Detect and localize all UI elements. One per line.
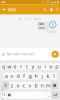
button[interactable]: ?123 [1,91,6,98]
staticText: m [45,82,50,89]
button[interactable]: r [18,63,24,70]
button[interactable]: Call [42,5,48,15]
button[interactable]: c [21,82,27,89]
staticText: u [37,63,40,70]
staticText: j [41,72,42,80]
button[interactable]: Shift [2,82,9,89]
button[interactable]: l [51,72,57,79]
staticText: 10:24 [47,30,56,34]
button[interactable]: p [54,63,59,70]
staticText: x [17,82,20,89]
staticText: a [5,72,8,80]
button[interactable]: m [45,82,51,89]
staticText: z [11,82,14,89]
button[interactable]: t [24,63,30,70]
button[interactable]: Emoji [7,91,11,98]
button[interactable]: w [6,63,12,70]
staticText: g [28,72,31,80]
staticText: 8002 [8,7,16,12]
staticText: sa., 11.01.2020 [18,17,41,20]
button[interactable]: z [9,82,15,89]
staticText: Stop [39,26,45,29]
button[interactable]: Back [1,5,8,15]
staticText: s [11,72,14,80]
button[interactable]: j [39,72,45,79]
staticText: h [34,72,37,80]
button[interactable]: More options [55,5,59,15]
button[interactable]: g [27,72,33,79]
button[interactable]: k [45,72,51,79]
staticText: y [31,63,34,70]
staticText: o [49,63,52,70]
button[interactable]: Enter [51,91,59,98]
staticText: . [48,91,49,99]
staticText: k [46,72,49,80]
staticText: d [17,72,20,80]
staticText: r [20,63,22,70]
staticText: n [40,82,43,89]
staticText: b [34,82,37,89]
staticText: f [23,72,25,80]
button[interactable]: . [46,91,51,98]
button[interactable]: i [42,63,48,70]
button[interactable]: a [3,72,9,79]
button[interactable]: q [0,63,6,70]
button[interactable]: Attach file [0,49,7,59]
staticText: w [7,63,11,70]
button[interactable]: d [15,72,21,79]
staticText: t [26,63,28,70]
staticText: q [2,63,5,70]
button[interactable]: h [33,72,39,79]
button[interactable]: s [9,72,15,79]
button[interactable]: Delete conversation [48,5,55,15]
button[interactable]: e [12,63,18,70]
staticText: v [28,82,31,89]
staticText: e [14,63,17,70]
button[interactable]: f [21,72,27,79]
button[interactable]: Send message [52,51,59,58]
button[interactable]: x [15,82,21,89]
staticText: Start [39,22,44,26]
button[interactable]: y [30,63,36,70]
button[interactable]: o [48,63,54,70]
button[interactable]: n [39,82,45,89]
staticText: Wprowadź wiadomość [7,52,35,56]
staticText: ?123 [2,90,6,100]
staticText: c [22,82,25,89]
staticText: i [44,63,45,70]
button[interactable]: Backspace [51,82,58,89]
button[interactable]: u [36,63,42,70]
staticText: p [55,63,58,70]
staticText: l [53,72,54,80]
button[interactable]: v [27,82,33,89]
staticText: 12:30 [41,0,50,4]
button[interactable]: b [33,82,39,89]
